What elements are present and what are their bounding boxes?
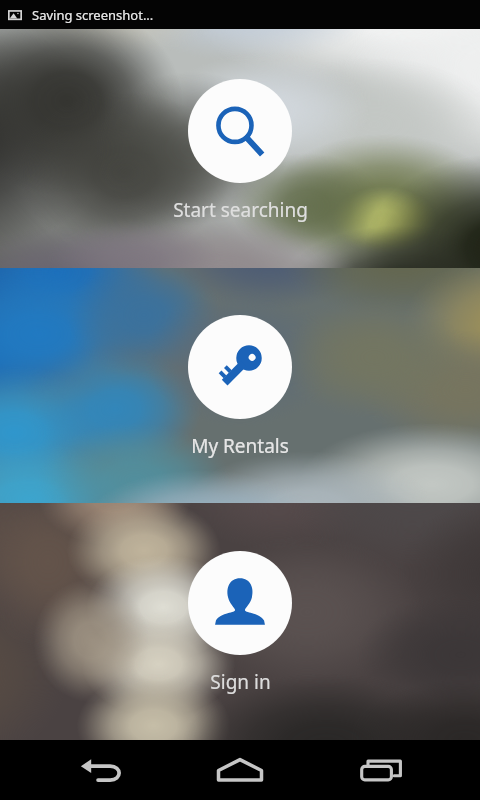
button[interactable]: Sign in [0, 503, 480, 740]
button[interactable]: Back [41, 740, 161, 800]
button[interactable]: Home [180, 740, 300, 800]
button[interactable]: My Rentals [0, 268, 480, 503]
staticText: Start searching [173, 197, 308, 223]
staticText: Sign in [210, 669, 271, 695]
button[interactable]: Recent apps [321, 740, 441, 800]
staticText: My Rentals [191, 433, 289, 459]
button[interactable]: Start searching [0, 29, 480, 268]
staticText: Saving screenshot... [32, 6, 154, 24]
